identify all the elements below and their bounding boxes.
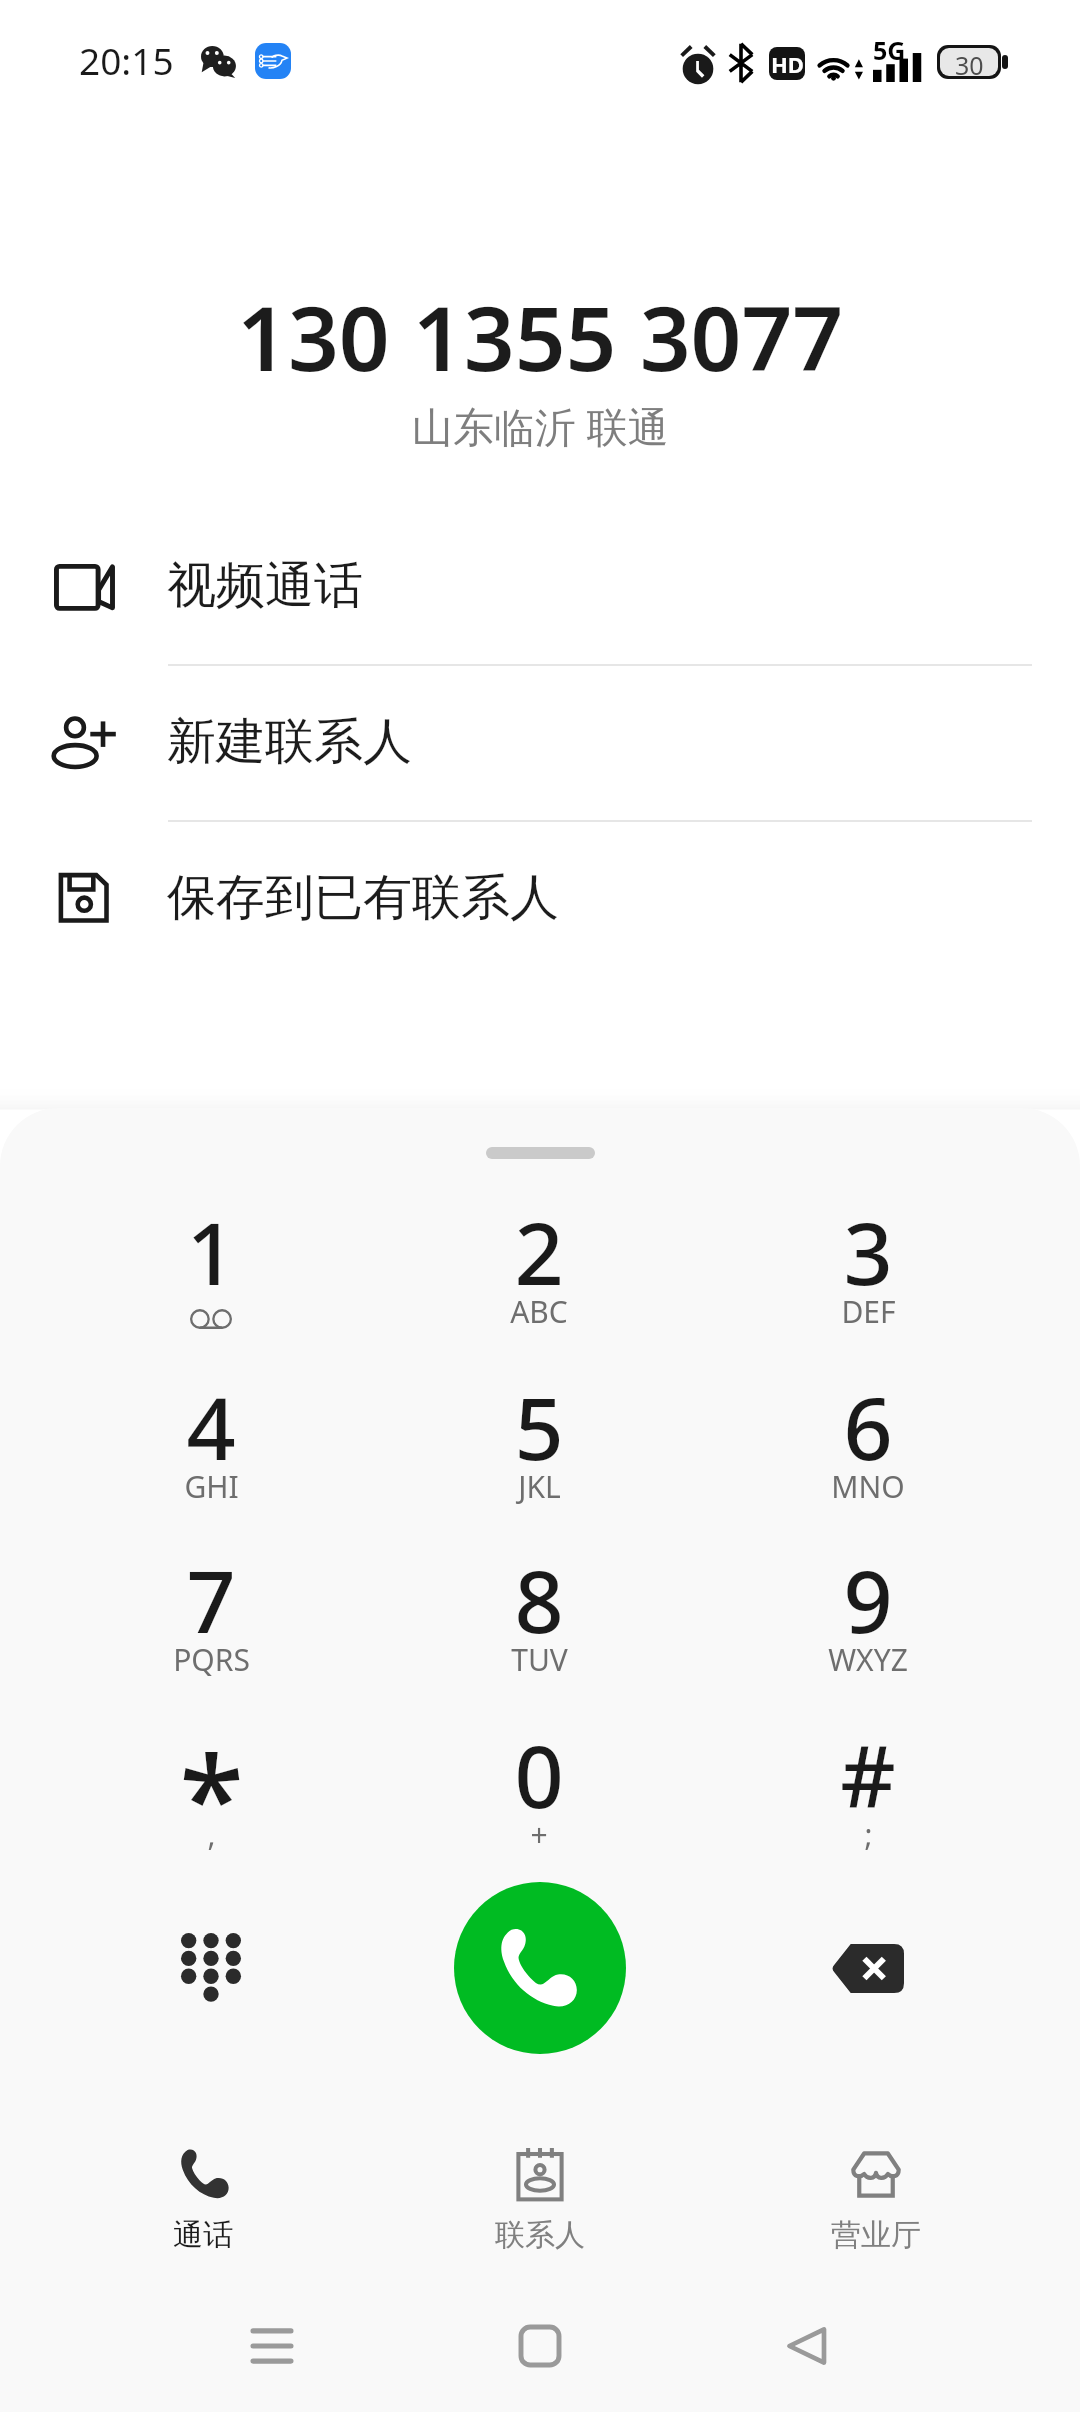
staticText: PQRS: [173, 1639, 250, 1680]
staticText: 1: [186, 1193, 236, 1310]
button[interactable]: Menu: [202, 2286, 342, 2406]
staticText: 视频通话: [167, 555, 363, 617]
button[interactable]: 3: [758, 1145, 978, 1365]
button[interactable]: 8: [429, 1493, 649, 1713]
staticText: 保存到已有联系人: [167, 867, 559, 929]
staticText: 20:15: [79, 35, 174, 85]
button[interactable]: 通话: [43, 2125, 363, 2265]
staticText: 3: [843, 1193, 893, 1310]
button[interactable]: 0: [429, 1668, 649, 1888]
staticText: ,: [207, 1814, 216, 1855]
staticText: +: [530, 1814, 548, 1855]
staticText: TUV: [511, 1639, 568, 1680]
staticText: 9: [843, 1541, 893, 1658]
staticText: 营业厅: [831, 2216, 921, 2254]
button[interactable]: *: [101, 1668, 321, 1888]
staticText: ;: [864, 1814, 873, 1855]
button[interactable]: Home: [470, 2286, 610, 2406]
staticText: *: [179, 1716, 244, 1877]
staticText: 5: [514, 1368, 564, 1485]
staticText: 0: [514, 1716, 564, 1833]
staticText: DEF: [841, 1291, 896, 1332]
staticText: MNO: [831, 1466, 905, 1507]
button[interactable]: Delete: [782, 1882, 954, 2054]
button[interactable]: #: [758, 1668, 978, 1888]
button[interactable]: 新建联系人: [0, 666, 1080, 820]
button[interactable]: Hide keypad: [125, 1882, 297, 2054]
staticText: ABC: [510, 1291, 568, 1332]
staticText: 联系人: [495, 2216, 585, 2254]
staticText: JKL: [518, 1466, 561, 1507]
button[interactable]: 4: [101, 1320, 321, 1540]
staticText: GHI: [184, 1466, 239, 1507]
button[interactable]: 5: [429, 1320, 649, 1540]
staticText: 5G: [873, 33, 906, 67]
button[interactable]: 2: [429, 1145, 649, 1365]
button[interactable]: 联系人: [380, 2125, 700, 2265]
staticText: #: [840, 1716, 896, 1833]
button[interactable]: 7: [101, 1493, 321, 1713]
button[interactable]: 1: [101, 1145, 321, 1365]
button[interactable]: 6: [758, 1320, 978, 1540]
staticText: 130 1355 3077: [237, 276, 844, 397]
staticText: 8: [514, 1541, 564, 1658]
staticText: 4: [186, 1368, 236, 1485]
staticText: 2: [514, 1193, 564, 1310]
button[interactable]: 保存到已有联系人: [0, 822, 1080, 976]
staticText: HD: [771, 49, 804, 79]
staticText: 30: [955, 48, 984, 76]
staticText: WXYZ: [828, 1639, 908, 1680]
staticText: 6: [843, 1368, 893, 1485]
staticText: 山东临沂 联通: [412, 398, 669, 454]
button[interactable]: 视频通话: [0, 510, 1080, 664]
staticText: 新建联系人: [167, 711, 412, 773]
button[interactable]: 营业厅: [716, 2125, 1036, 2265]
button[interactable]: 9: [758, 1493, 978, 1713]
button[interactable]: Call: [454, 1882, 626, 2054]
staticText: 7: [186, 1541, 236, 1658]
button[interactable]: Back: [736, 2286, 876, 2406]
staticText: 通话: [173, 2216, 233, 2254]
